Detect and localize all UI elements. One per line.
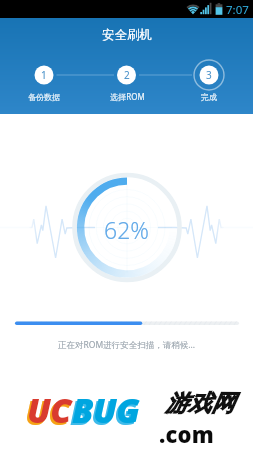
staticText: 2	[124, 68, 130, 82]
staticText: 正在对ROM进行安全扫描，请稍候...	[58, 339, 195, 351]
staticText: 3	[206, 68, 212, 82]
button[interactable]: 3	[191, 64, 227, 86]
staticText: 安全刷机	[102, 27, 152, 43]
staticText: UC	[25, 389, 70, 435]
staticText: 游戏网	[165, 389, 234, 418]
button[interactable]: 2	[109, 64, 145, 86]
staticText: UC	[27, 387, 72, 433]
staticText: 完成	[201, 92, 217, 102]
button[interactable]: 1	[26, 64, 62, 86]
staticText: .com	[159, 419, 215, 449]
staticText: 62%	[104, 214, 149, 242]
staticText: 选择ROM	[110, 91, 145, 102]
staticText: 1	[41, 68, 47, 82]
staticText: 备份数据	[28, 92, 60, 102]
staticText: 7:07	[226, 2, 249, 18]
staticText: BUG	[70, 389, 138, 435]
staticText: BUG	[72, 387, 140, 433]
